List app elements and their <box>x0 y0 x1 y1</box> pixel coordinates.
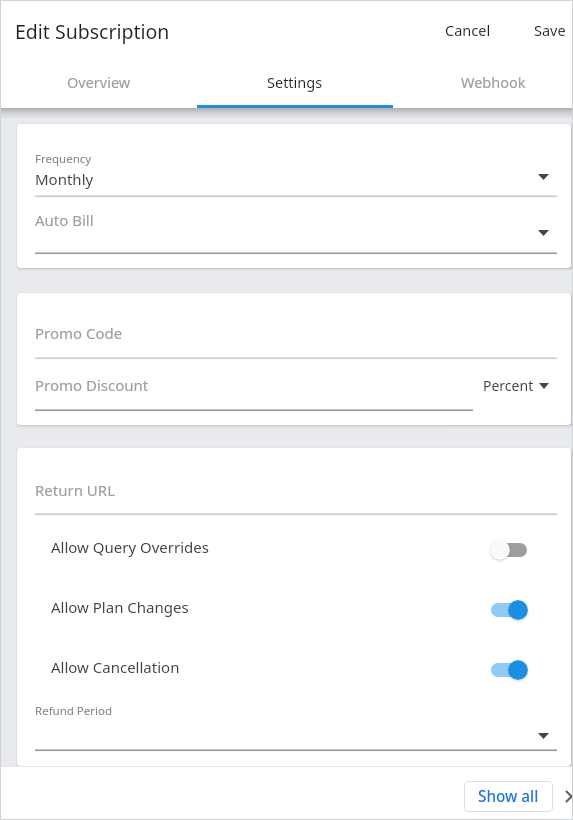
button[interactable]: Overview <box>0 63 197 108</box>
staticText: Refund Period <box>35 703 113 719</box>
button[interactable]: Close <box>556 781 573 811</box>
staticText: Allow Plan Changes <box>51 597 519 617</box>
button[interactable]: Allow Cancellation <box>35 635 557 695</box>
staticText: Overview <box>67 72 131 92</box>
staticText: Cancel <box>445 20 491 40</box>
staticText: Allow Cancellation <box>51 657 519 677</box>
staticText: Auto Bill <box>35 210 94 230</box>
staticText: Show all <box>478 786 539 807</box>
staticText: Frequency <box>35 151 92 167</box>
button[interactable]: Save <box>520 0 573 61</box>
staticText: Percent <box>483 376 534 395</box>
staticText: Monthly <box>35 169 94 189</box>
button[interactable]: Webhook <box>393 63 573 108</box>
button[interactable]: Allow Query Overrides <box>35 515 557 575</box>
staticText: Return URL <box>35 480 115 500</box>
staticText: Promo Discount <box>35 375 483 395</box>
button[interactable]: Show all <box>464 781 553 812</box>
staticText: Allow Query Overrides <box>51 537 519 557</box>
staticText: Promo Code <box>35 323 123 343</box>
button[interactable]: Cancel <box>431 0 520 61</box>
button[interactable]: Settings <box>197 63 393 108</box>
staticText: Settings <box>267 72 323 92</box>
staticText: Edit Subscription <box>15 18 170 45</box>
staticText: Save <box>534 20 566 40</box>
staticText: Webhook <box>461 72 526 92</box>
button[interactable]: Allow Plan Changes <box>35 575 557 635</box>
